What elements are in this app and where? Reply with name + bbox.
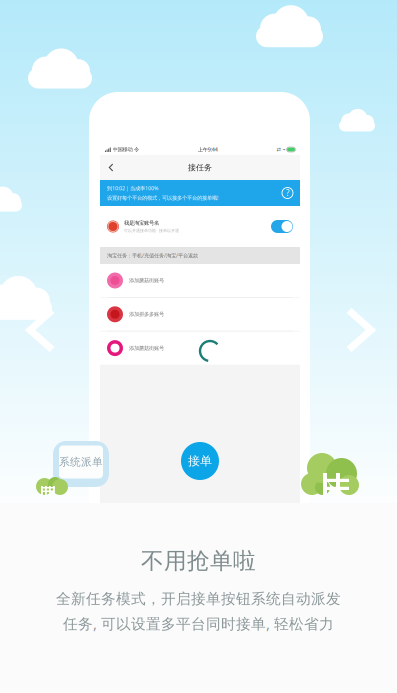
- staticText: 全新任务模式，开启接单按钮系统自动派发: [56, 590, 341, 608]
- staticText: 系统派单: [59, 455, 103, 468]
- staticText: 我是淘宝账号名: [124, 220, 159, 226]
- staticText: 接任务: [188, 163, 212, 172]
- button[interactable]: 接单: [177, 438, 223, 484]
- button[interactable]: 添加蘑菇街账号: [100, 332, 300, 365]
- staticText: 添加蘑菇街账号: [129, 277, 164, 284]
- button[interactable]: 添加拼多多账号: [100, 298, 300, 331]
- staticText: 中国移动: [112, 146, 132, 153]
- staticText: ⇄ ⌁: [276, 146, 285, 153]
- staticText: 不用抢单啦: [141, 547, 256, 575]
- staticText: 淘宝任务：手机/充值任务/淘宝/平台返款: [107, 252, 198, 259]
- staticText: 可以开通接单功能 接单以开通: [124, 228, 179, 233]
- button[interactable]: Next: [332, 302, 388, 358]
- staticText: 到10:02｜当成率100%: [107, 185, 158, 192]
- staticText: 接单: [188, 454, 212, 468]
- staticText: 上午9:44: [198, 146, 218, 153]
- staticText: 设置好每个平台的模式，可以接多个平台的接单哦!: [107, 194, 218, 201]
- button[interactable]: Back: [103, 159, 119, 175]
- staticText: ?: [286, 188, 289, 198]
- button[interactable]: Previous: [13, 302, 69, 358]
- staticText: 添加拼多多账号: [129, 311, 164, 318]
- staticText: 令: [134, 146, 139, 153]
- staticText: 任务, 可以设置多平台同时接单, 轻松省力: [63, 614, 334, 633]
- button[interactable]: 添加蘑菇街账号: [100, 264, 300, 297]
- staticText: 添加蘑菇街账号: [129, 345, 164, 351]
